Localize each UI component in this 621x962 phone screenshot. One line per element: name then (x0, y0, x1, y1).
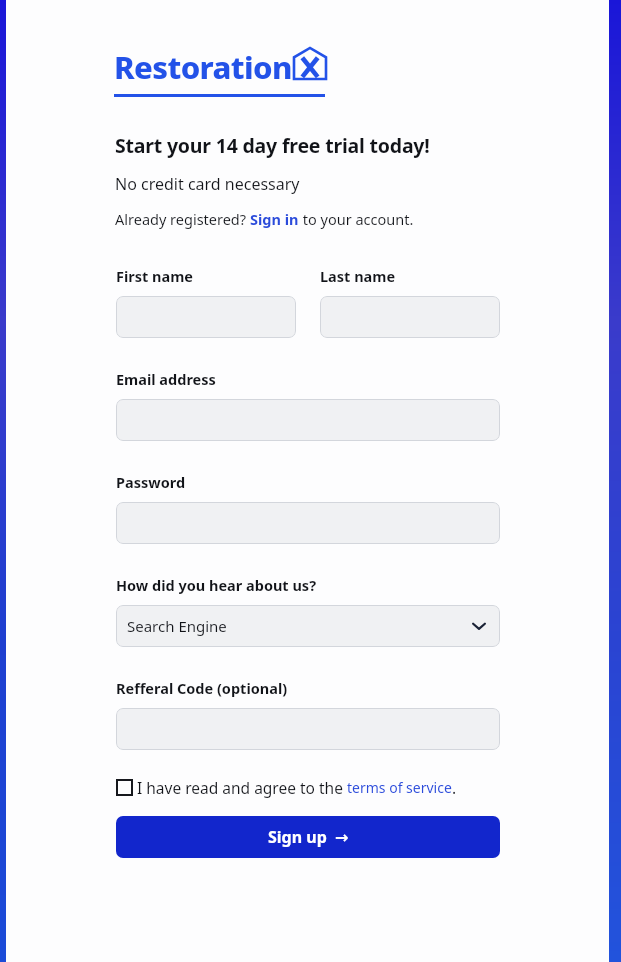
staticText: Sign up → (268, 826, 349, 848)
staticText: Sign in (250, 209, 299, 229)
staticText: I have read and agree to the (137, 777, 347, 798)
button[interactable] (320, 296, 500, 338)
button[interactable]: Sign in (250, 209, 299, 229)
staticText: Email address (116, 369, 216, 389)
button[interactable] (116, 296, 296, 338)
staticText: No credit card necessary (115, 173, 300, 195)
button[interactable] (116, 708, 500, 750)
staticText: to your account. (299, 209, 414, 229)
button[interactable]: Search Engine (116, 605, 500, 647)
staticText: Start your 14 day free trial today! (115, 132, 430, 159)
staticText: First name (116, 266, 194, 286)
staticText: terms of service (347, 778, 452, 797)
staticText: How did you hear about us? (116, 575, 317, 595)
button[interactable]: Agree to terms of service (116, 779, 133, 796)
staticText: . (452, 777, 457, 798)
staticText: Already registered? (115, 209, 250, 229)
staticText: Restoration (114, 46, 292, 88)
staticText: Last name (320, 266, 396, 286)
button[interactable]: Sign up → (116, 816, 500, 858)
staticText: Password (116, 472, 186, 492)
staticText: Refferal Code (optional) (116, 678, 288, 698)
staticText: Search Engine (127, 616, 227, 636)
button[interactable] (116, 399, 500, 441)
button[interactable]: terms of service (347, 778, 452, 797)
button[interactable] (116, 502, 500, 544)
